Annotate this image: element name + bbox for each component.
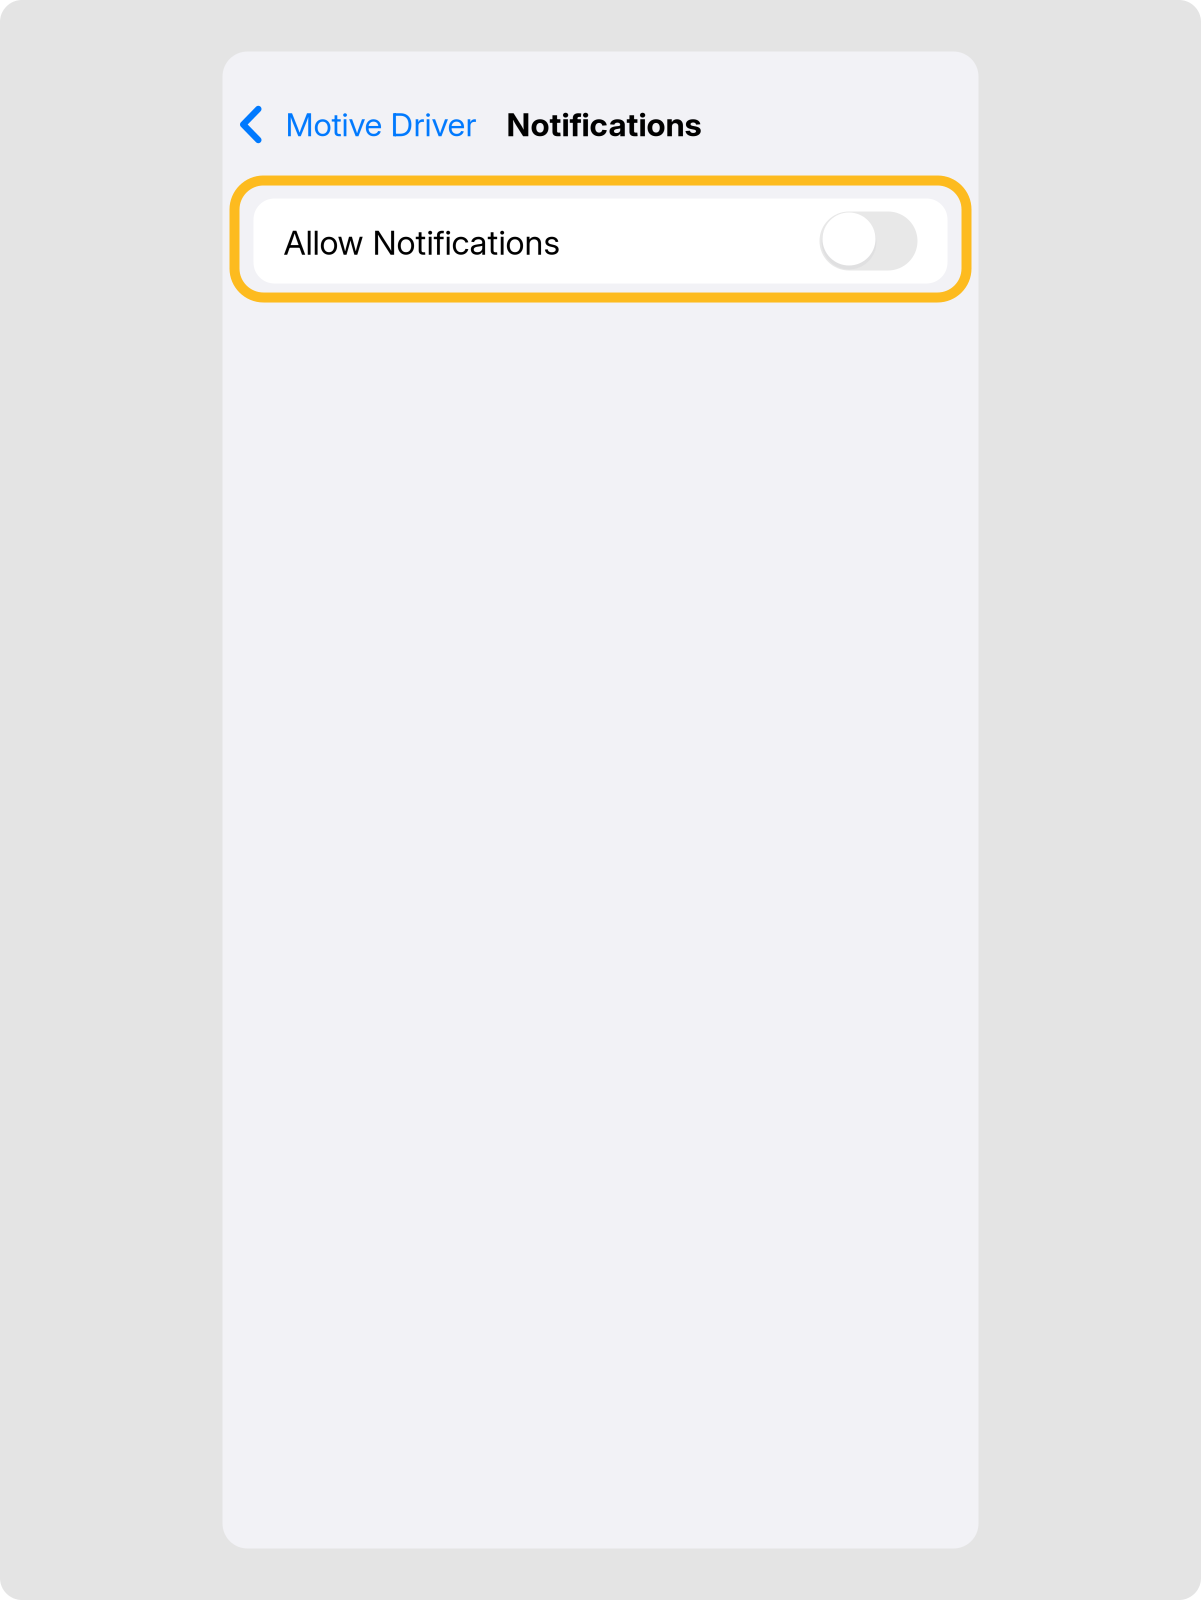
staticText: Motive Driver (285, 105, 476, 144)
staticText: Notifications (506, 105, 701, 144)
button[interactable]: Motive Driver (222, 87, 484, 161)
staticText: Allow Notifications (283, 222, 560, 263)
button[interactable]: Allow Notifications (253, 198, 947, 283)
